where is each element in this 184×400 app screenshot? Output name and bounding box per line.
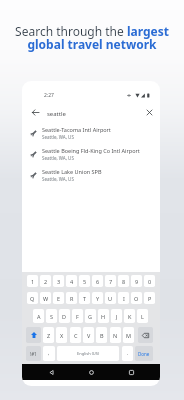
button[interactable]: 0 [144, 275, 155, 287]
button[interactable]: Back [26, 103, 44, 121]
button[interactable]: D [59, 309, 70, 323]
staticText: English (US) [77, 351, 100, 356]
staticText: E [57, 295, 61, 302]
button[interactable]: Done [135, 346, 153, 361]
staticText: P [148, 295, 152, 302]
staticText: C [74, 332, 78, 339]
button[interactable]: Backspace [138, 327, 153, 343]
staticText: Seattle, WA, US [42, 155, 74, 161]
button[interactable]: J [111, 309, 122, 323]
staticText: Seattle Boeing Fld-King Co Intl Airport [42, 147, 140, 154]
button[interactable]: !#1 [26, 346, 41, 361]
button[interactable]: , [43, 346, 55, 361]
button[interactable]: Home [81, 364, 101, 380]
button[interactable]: 8 [118, 275, 129, 287]
staticText: Q [30, 295, 35, 302]
button[interactable]: C [70, 327, 81, 343]
staticText: 2 [44, 278, 48, 285]
button[interactable]: R [66, 292, 77, 304]
staticText: X [60, 332, 64, 339]
staticText: L [141, 313, 144, 320]
staticText: O [134, 295, 139, 302]
staticText: H [101, 313, 106, 320]
button[interactable]: F [72, 309, 83, 323]
button[interactable]: X [56, 327, 67, 343]
button[interactable]: B [96, 327, 107, 343]
button[interactable]: E [53, 292, 64, 304]
button[interactable]: V [83, 327, 94, 343]
button[interactable]: O [131, 292, 142, 304]
button[interactable]: Z [43, 327, 54, 343]
staticText: I [123, 295, 125, 302]
button[interactable]: Back [41, 364, 61, 380]
button[interactable]: Seattle Lake Union SPB [22, 165, 160, 185]
staticText: R [70, 295, 74, 302]
button[interactable]: H [98, 309, 109, 323]
button[interactable]: 4 [66, 275, 77, 287]
staticText: Seattle, WA, US [42, 134, 74, 140]
staticText: . [127, 350, 129, 357]
button[interactable]: 7 [105, 275, 116, 287]
button[interactable]: U [105, 292, 116, 304]
button[interactable]: 5 [79, 275, 90, 287]
staticText: B [100, 332, 104, 339]
staticText: Z [47, 332, 51, 339]
button[interactable]: Q [27, 292, 38, 304]
button[interactable]: A [33, 309, 44, 323]
staticText: 7 [109, 278, 113, 285]
staticText: 5 [83, 278, 87, 285]
button[interactable]: P [144, 292, 155, 304]
button[interactable]: Y [92, 292, 103, 304]
button[interactable]: N [110, 327, 121, 343]
button[interactable]: 9 [131, 275, 142, 287]
staticText: G [88, 313, 93, 320]
staticText: 6 [96, 278, 100, 285]
button[interactable]: S [46, 309, 57, 323]
staticText: 0 [148, 278, 152, 285]
staticText: 3 [57, 278, 61, 285]
staticText: W [43, 295, 49, 302]
staticText: Search through the largest global travel… [12, 23, 172, 53]
staticText: M [126, 332, 131, 339]
button[interactable]: Recent apps [121, 364, 141, 380]
staticText: T [83, 295, 87, 302]
button[interactable]: 3 [53, 275, 64, 287]
button[interactable]: 1 [27, 275, 38, 287]
button[interactable]: . [122, 346, 133, 361]
staticText: U [108, 295, 113, 302]
staticText: F [76, 313, 79, 320]
button[interactable]: Seattle Boeing Fld-King Co Intl Airport [22, 144, 160, 164]
staticText: A [37, 313, 41, 320]
button[interactable]: 6 [92, 275, 103, 287]
button[interactable]: L [137, 309, 148, 323]
staticText: S [50, 313, 54, 320]
button[interactable]: M [123, 327, 134, 343]
staticText: Done [138, 351, 150, 357]
button[interactable]: T [79, 292, 90, 304]
button[interactable]: Seattle-Tacoma Intl Airport [22, 123, 160, 143]
button[interactable]: I [118, 292, 129, 304]
button[interactable]: Shift [26, 327, 41, 343]
staticText: seattle [47, 110, 66, 118]
button[interactable]: W [40, 292, 51, 304]
staticText: V [87, 332, 91, 339]
staticText: Seattle, WA, US [42, 176, 74, 182]
staticText: !#1 [30, 351, 37, 357]
button[interactable]: G [85, 309, 96, 323]
staticText: Y [96, 295, 100, 302]
staticText: 8 [122, 278, 126, 285]
button[interactable]: Clear search [140, 103, 158, 121]
staticText: 9 [135, 278, 139, 285]
staticText: , [48, 350, 50, 357]
staticText: D [62, 313, 67, 320]
staticText: Seattle-Tacoma Intl Airport [42, 126, 111, 133]
staticText: N [113, 332, 118, 339]
button[interactable]: 2 [40, 275, 51, 287]
staticText: 2:27 [44, 92, 54, 99]
staticText: J [116, 313, 118, 320]
staticText: K [128, 313, 132, 320]
staticText: 4 [70, 278, 74, 285]
button[interactable]: K [124, 309, 135, 323]
staticText: 1 [31, 278, 35, 285]
button[interactable]: English (US) [57, 346, 119, 361]
